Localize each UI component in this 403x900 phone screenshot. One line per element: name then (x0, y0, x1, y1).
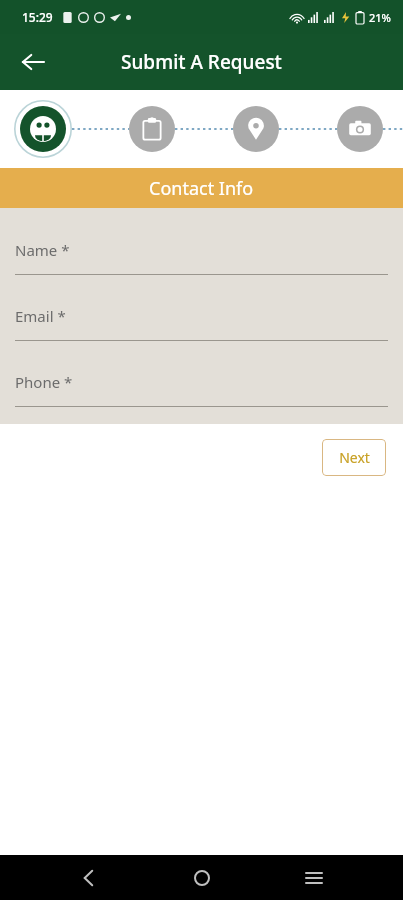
staticText: Submit A Request (121, 49, 282, 75)
button[interactable]: Email * (0, 292, 403, 358)
button[interactable]: Home (178, 855, 226, 900)
button[interactable]: Back (65, 855, 113, 900)
staticText: Name * (15, 240, 70, 260)
button[interactable]: Request details (129, 106, 175, 152)
button[interactable]: Back (10, 39, 56, 85)
staticText: Email * (15, 306, 66, 326)
button[interactable]: Name * (0, 226, 403, 292)
button[interactable]: Recent apps (290, 855, 338, 900)
button[interactable]: Location (233, 106, 279, 152)
staticText: Phone * (15, 372, 73, 392)
button[interactable]: Photo (337, 106, 383, 152)
button[interactable]: Contact Info (14, 100, 72, 158)
button[interactable]: Next (322, 439, 386, 476)
staticText: 15:29 (22, 9, 53, 25)
staticText: 21% (369, 10, 391, 25)
staticText: Next (339, 448, 370, 467)
staticText: Contact Info (149, 176, 254, 201)
button[interactable]: Phone * (0, 358, 403, 424)
